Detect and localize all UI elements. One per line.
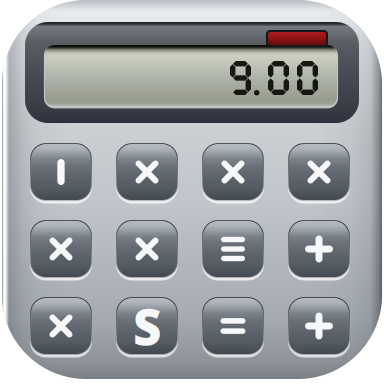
button[interactable]: Multiply [204, 145, 264, 201]
button[interactable]: Multiply [32, 299, 92, 355]
button[interactable]: S [118, 299, 178, 355]
button[interactable]: Equals [204, 299, 264, 355]
button[interactable]: Multiply [290, 145, 350, 201]
button[interactable]: One [32, 145, 92, 201]
button[interactable]: Add [290, 222, 350, 278]
button[interactable]: Multiply [118, 222, 178, 278]
button[interactable]: Menu [204, 222, 264, 278]
button[interactable]: Multiply [118, 145, 178, 201]
staticText: S [133, 293, 161, 359]
button[interactable]: Add [290, 299, 350, 355]
button[interactable]: Multiply [32, 222, 92, 278]
